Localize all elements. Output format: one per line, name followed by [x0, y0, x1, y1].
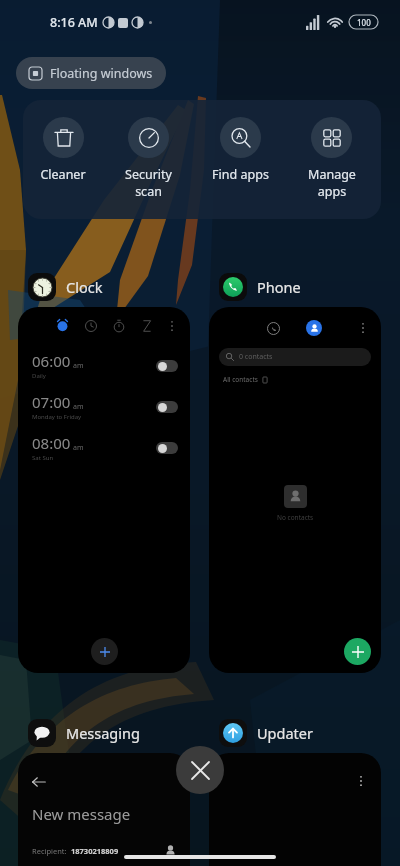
staticText: Updater	[257, 723, 313, 743]
staticText: 06:00	[32, 351, 71, 371]
button[interactable]: 0 contacts	[209, 307, 381, 673]
staticText: No contacts	[277, 513, 314, 522]
button[interactable]: Cleaner	[23, 117, 103, 183]
staticText: Recipient:	[32, 846, 67, 856]
staticText: Messaging	[66, 723, 140, 743]
button[interactable]: Floating windows	[16, 57, 166, 89]
staticText: Floating windows	[50, 65, 153, 82]
button[interactable]: Toggle alarm	[156, 360, 178, 372]
button[interactable]	[209, 753, 381, 866]
staticText: Manage apps	[308, 166, 356, 199]
staticText: 07:00	[32, 392, 71, 412]
staticText: Monday to Friday	[32, 413, 82, 421]
staticText: am	[73, 443, 84, 453]
staticText: 18730218809	[71, 846, 119, 856]
staticText: Cleaner	[40, 166, 86, 183]
button[interactable]: Find apps	[194, 117, 286, 183]
button[interactable]: Security scan	[103, 117, 194, 199]
button[interactable]: 06:00	[18, 307, 190, 673]
staticText: am	[73, 402, 84, 412]
staticText: 0 contacts	[239, 352, 273, 362]
staticText: New message	[32, 804, 131, 824]
staticText: Daily	[32, 372, 46, 380]
staticText: am	[73, 361, 84, 371]
staticText: 8:16 AM	[50, 14, 98, 31]
button[interactable]: Add contact	[344, 638, 371, 665]
staticText: 100	[357, 17, 371, 28]
staticText: Phone	[257, 277, 301, 297]
button[interactable]: New message	[18, 753, 190, 866]
button[interactable]: Toggle alarm	[156, 442, 178, 454]
staticText: Clock	[66, 277, 103, 297]
button[interactable]: Close all	[176, 746, 224, 794]
staticText: Sat Sun	[32, 454, 54, 462]
staticText: Security scan	[125, 166, 172, 199]
staticText: Find apps	[212, 166, 269, 183]
staticText: All contacts	[223, 375, 258, 384]
button[interactable]: Manage apps	[286, 117, 377, 199]
button[interactable]: Toggle alarm	[156, 401, 178, 413]
staticText: 08:00	[32, 433, 71, 453]
